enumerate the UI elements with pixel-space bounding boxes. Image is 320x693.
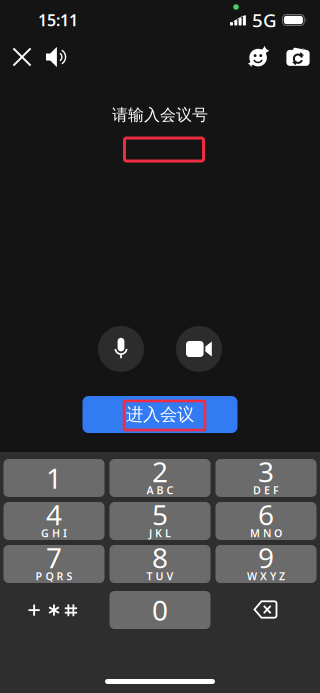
button[interactable]: Turn off camera bbox=[176, 326, 222, 372]
staticText: 7 bbox=[46, 539, 62, 576]
button[interactable]: 进入会议 bbox=[82, 396, 237, 433]
staticText: 进入会议 bbox=[126, 404, 194, 425]
button[interactable]: 1 bbox=[3, 459, 104, 497]
button[interactable]: 8 bbox=[109, 545, 210, 583]
button[interactable]: 3 bbox=[215, 459, 316, 497]
staticText: A B C bbox=[146, 483, 173, 497]
button[interactable]: 4 bbox=[3, 502, 104, 540]
button[interactable]: 6 bbox=[215, 502, 316, 540]
staticText: 3 bbox=[258, 453, 274, 490]
staticText: P Q R S bbox=[35, 569, 72, 583]
button[interactable]: 7 bbox=[3, 545, 104, 583]
staticText: 8 bbox=[152, 539, 168, 576]
staticText: 6 bbox=[258, 496, 274, 533]
button[interactable]: Delete bbox=[215, 591, 316, 629]
button[interactable]: Mute microphone bbox=[98, 326, 144, 372]
button[interactable]: 0 bbox=[109, 591, 210, 629]
staticText: 15:11 bbox=[38, 9, 78, 31]
staticText: D E F bbox=[253, 483, 279, 497]
staticText: 2 bbox=[152, 453, 168, 490]
staticText: T U V bbox=[146, 569, 173, 583]
staticText: W X Y Z bbox=[247, 569, 285, 583]
staticText: 5G bbox=[252, 8, 277, 32]
button[interactable]: 9 bbox=[215, 545, 316, 583]
staticText: 4 bbox=[46, 496, 62, 533]
button[interactable]: 2 bbox=[109, 459, 210, 497]
staticText: 0 bbox=[152, 591, 168, 629]
button[interactable]: 5 bbox=[109, 502, 210, 540]
button[interactable]: Flip camera bbox=[281, 40, 315, 74]
staticText: 1 bbox=[46, 459, 62, 497]
staticText: 请输入会议号 bbox=[112, 105, 208, 125]
button[interactable]: Symbols bbox=[3, 591, 104, 629]
button[interactable]: Speaker bbox=[40, 40, 74, 74]
button[interactable]: Beauty filters bbox=[242, 40, 276, 74]
button[interactable]: Close bbox=[5, 40, 39, 74]
staticText: J K L bbox=[149, 526, 171, 540]
staticText: M N O bbox=[250, 526, 282, 540]
staticText: 9 bbox=[258, 539, 274, 576]
staticText: 5 bbox=[152, 496, 168, 533]
staticText: G H I bbox=[41, 526, 67, 540]
